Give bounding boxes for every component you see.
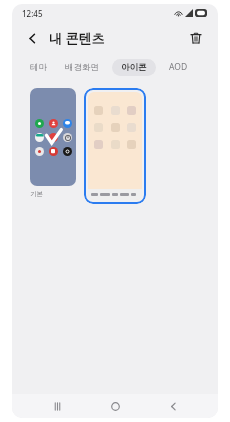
staticText: 내 콘텐츠 (49, 29, 105, 47)
button[interactable]: 배경화면 (63, 59, 101, 76)
button[interactable]: Home (102, 394, 128, 418)
staticText: 테마 (30, 62, 47, 73)
staticText: 배경화면 (65, 62, 99, 73)
button[interactable]: Delete (184, 26, 208, 50)
button[interactable]: Recent apps (44, 394, 70, 418)
staticText: AOD (169, 61, 188, 73)
button[interactable]: 테마 (28, 59, 49, 76)
button[interactable] (84, 88, 146, 204)
staticText: 기본 (30, 190, 43, 198)
button[interactable]: AOD (167, 58, 190, 76)
button[interactable]: Back (20, 26, 44, 50)
button[interactable]: 아이콘 (112, 59, 156, 76)
button[interactable]: 기본 (30, 88, 76, 198)
staticText: 12:45 (22, 8, 43, 19)
button[interactable]: Back (160, 394, 186, 418)
staticText: 아이콘 (121, 62, 147, 73)
